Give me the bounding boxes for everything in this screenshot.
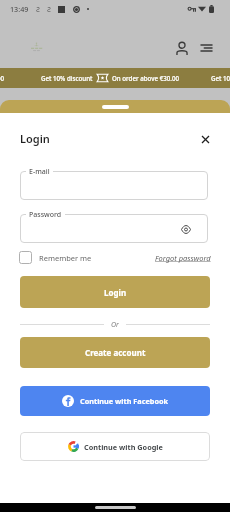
staticText: Login xyxy=(20,131,50,146)
staticText: Continue with Google xyxy=(84,442,163,452)
staticText: Create account xyxy=(85,347,146,358)
staticText: Password xyxy=(29,210,62,220)
button[interactable]: Continue with Facebook xyxy=(20,386,210,416)
staticText: 13:49 xyxy=(10,4,29,14)
button[interactable] xyxy=(20,171,208,200)
button[interactable]: Remember me xyxy=(19,251,92,264)
staticText: Continue with Facebook xyxy=(80,396,169,406)
staticText: E-mail xyxy=(29,167,50,177)
staticText: Get 10 xyxy=(211,74,230,82)
button[interactable]: Create account xyxy=(20,337,210,368)
button[interactable]: Login xyxy=(20,276,210,308)
staticText: Ƨ xyxy=(47,5,51,15)
button[interactable] xyxy=(20,214,208,243)
staticText: Or xyxy=(111,320,119,330)
button[interactable]: Menu xyxy=(196,38,216,58)
staticText: Get 10% discount xyxy=(41,74,93,82)
staticText: Login xyxy=(104,287,127,298)
button[interactable]: Close xyxy=(195,129,215,149)
staticText: 00 xyxy=(0,74,5,82)
staticText: On order above €30.00 xyxy=(112,74,180,82)
button[interactable]: Account xyxy=(172,38,192,58)
staticText: Remember me xyxy=(39,253,92,263)
staticText: Ƨ xyxy=(36,5,40,15)
button[interactable]: Show password xyxy=(180,223,192,235)
button[interactable]: Continue with Google xyxy=(20,432,210,461)
staticText: Forgot password xyxy=(155,253,211,263)
button[interactable]: Forgot password xyxy=(155,253,211,263)
